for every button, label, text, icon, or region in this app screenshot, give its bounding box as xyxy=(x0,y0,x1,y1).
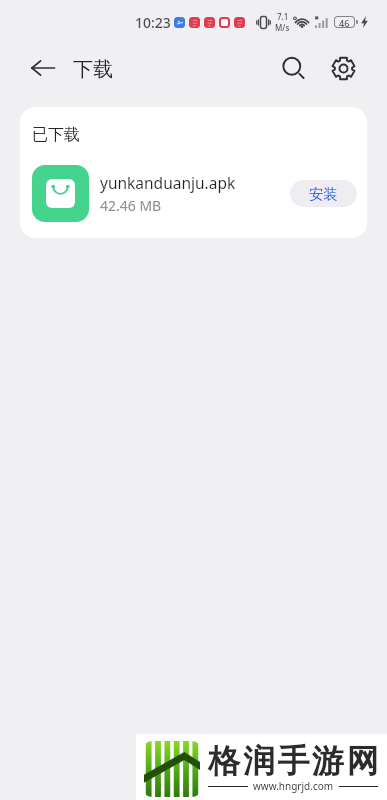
staticText: 下载 xyxy=(73,57,113,82)
staticText: 已下载 xyxy=(32,125,80,145)
staticText: M/s xyxy=(275,22,290,33)
staticText: yunkanduanju.apk xyxy=(100,172,236,193)
staticText: 10:23 xyxy=(135,13,171,32)
button[interactable]: Search xyxy=(277,51,311,85)
staticText: 安装 xyxy=(309,185,338,203)
button[interactable]: Back xyxy=(30,55,113,81)
staticText: 42.46 MB xyxy=(100,196,162,215)
button[interactable]: yunkanduanju.apk xyxy=(32,165,357,222)
button[interactable]: 安装 xyxy=(290,180,357,207)
staticText: www.hngrjd.com xyxy=(253,779,334,793)
other: Back xyxy=(30,55,56,81)
staticText: 格润手游网 xyxy=(207,741,380,781)
staticText: 7.1 xyxy=(277,11,289,22)
button[interactable]: Settings xyxy=(326,51,360,85)
staticText: 46 xyxy=(339,17,350,27)
